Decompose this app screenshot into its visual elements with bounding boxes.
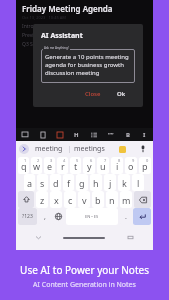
staticText: o [128,160,134,172]
button[interactable]: Generate a 10 points meeting agenda for … [41,49,135,83]
button[interactable] [133,208,151,225]
button[interactable]: Keyboard settings [107,225,153,250]
button[interactable]: Emoji [109,141,136,157]
staticText: Ok [117,90,126,98]
button[interactable]: Voice input [136,141,150,157]
button[interactable]: r [57,157,68,174]
staticText: m [122,194,131,206]
button[interactable]: j [104,174,116,191]
button[interactable]: w [31,157,42,174]
button[interactable]: Close [82,88,104,100]
staticText: Use AI to Power your Notes [20,263,149,277]
button[interactable]: s [37,174,48,191]
button[interactable]: k [118,174,130,191]
button[interactable]: g [76,174,88,191]
button[interactable]: Hide keyboard [16,225,61,250]
button[interactable]: H [68,128,85,141]
button[interactable]: . [120,208,131,225]
staticText: Generate a 10 points meeting agenda for … [45,53,135,77]
button[interactable]: Ok [114,88,129,100]
button[interactable]: x [50,191,62,208]
button[interactable]: m [120,191,132,208]
button[interactable]: B [119,128,136,141]
staticText: 1 [24,158,27,163]
button[interactable] [134,191,151,208]
staticText: B [126,131,130,139]
button[interactable]: u [97,157,109,174]
staticText: c [68,194,73,206]
staticText: 5 [76,158,79,163]
staticText: 0 [146,158,149,163]
staticText: k [122,177,127,189]
staticText: Q3 Sales Review [22,41,60,48]
button[interactable]: Expand [19,144,29,154]
button[interactable]: l [132,174,144,191]
staticText: 3 [50,158,53,163]
button[interactable]: I [136,128,153,141]
button[interactable]: n [106,191,118,208]
button[interactable]: c [64,191,76,208]
staticText: 8 [118,158,121,163]
staticText: y [87,160,92,172]
staticText: Ask me Anything! [44,46,69,50]
button[interactable]: a [24,174,35,191]
staticText: Friday Meeting Agenda [22,3,113,14]
staticText: , [44,212,46,222]
staticText: q [21,160,27,172]
button[interactable]: f [63,174,74,191]
button[interactable]: ?123 [18,208,37,225]
button[interactable]: meeting [29,141,69,157]
button[interactable]: meetings [70,141,109,157]
staticText: i [116,160,119,172]
staticText: . [125,212,127,222]
staticText: z [40,194,45,206]
staticText: ?123 [22,213,33,220]
staticText: 9 [132,158,135,163]
button[interactable]: image [16,128,34,141]
button[interactable]: hl [51,128,68,141]
staticText: H [74,131,79,139]
staticText: w [33,160,41,172]
button[interactable]: d [50,174,61,191]
button[interactable]: list [85,128,102,141]
staticText: 6 [90,158,93,163]
button[interactable]: o [125,157,137,174]
staticText: x [54,194,59,206]
staticText: 7 [104,158,107,163]
button[interactable]: e [44,157,55,174]
button[interactable]: q [18,157,29,174]
staticText: v [82,194,87,206]
staticText: u [100,160,106,172]
button[interactable]: doc [34,128,51,141]
button[interactable]: quote [102,128,119,141]
staticText: l [137,177,140,189]
staticText: b [95,194,101,206]
staticText: I [143,131,146,139]
button[interactable] [53,208,64,225]
button[interactable]: i [111,157,123,174]
button[interactable]: t [70,157,81,174]
button[interactable]: EN • ES [66,208,118,225]
staticText: h [93,177,99,189]
staticText: t [74,160,78,172]
button[interactable]: z [36,191,48,208]
button[interactable]: h [90,174,102,191]
staticText: EN • ES [85,214,99,219]
button[interactable]: b [92,191,104,208]
staticText: e [47,160,53,172]
button[interactable]: y [83,157,95,174]
staticText: Oct 13, 2023 10:45 AM [22,15,66,20]
staticText: r [61,160,65,172]
button[interactable]: p [139,157,151,174]
staticText: meeting [35,144,63,154]
staticText: 2 [37,158,40,163]
button[interactable]: v [78,191,90,208]
button[interactable]: , [39,208,51,225]
staticText: n [109,194,115,206]
button[interactable] [18,191,34,208]
staticText: d [53,177,59,189]
staticText: Introduction [22,23,52,30]
staticText: j [109,177,112,189]
staticText: f [67,177,71,189]
staticText: Previous Meeting Notes [22,32,78,39]
